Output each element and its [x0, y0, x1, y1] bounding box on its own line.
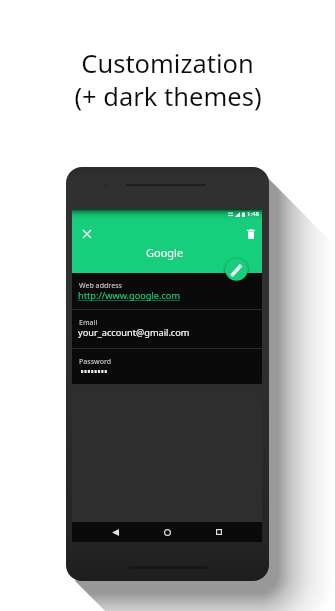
staticText: http://www.google.com [78, 289, 181, 302]
button[interactable]: Recents [211, 524, 227, 540]
staticText: Web address [79, 281, 122, 291]
button[interactable]: Email [72, 310, 262, 348]
staticText: (+ dark themes) [74, 79, 262, 114]
button[interactable]: Back [107, 524, 123, 540]
button[interactable]: Web address [72, 273, 262, 309]
button[interactable]: Edit [223, 256, 250, 283]
staticText: Password [79, 357, 112, 367]
staticText: your_account@gmail.com [78, 326, 190, 339]
button[interactable]: Close [79, 226, 95, 242]
button[interactable]: Delete [243, 226, 259, 242]
staticText: Customization [81, 46, 254, 81]
staticText: Email [79, 318, 98, 328]
staticText: 1:48 [247, 210, 259, 218]
staticText: Google [146, 245, 184, 260]
button[interactable]: Home [159, 524, 175, 540]
button[interactable]: Password [72, 349, 262, 384]
